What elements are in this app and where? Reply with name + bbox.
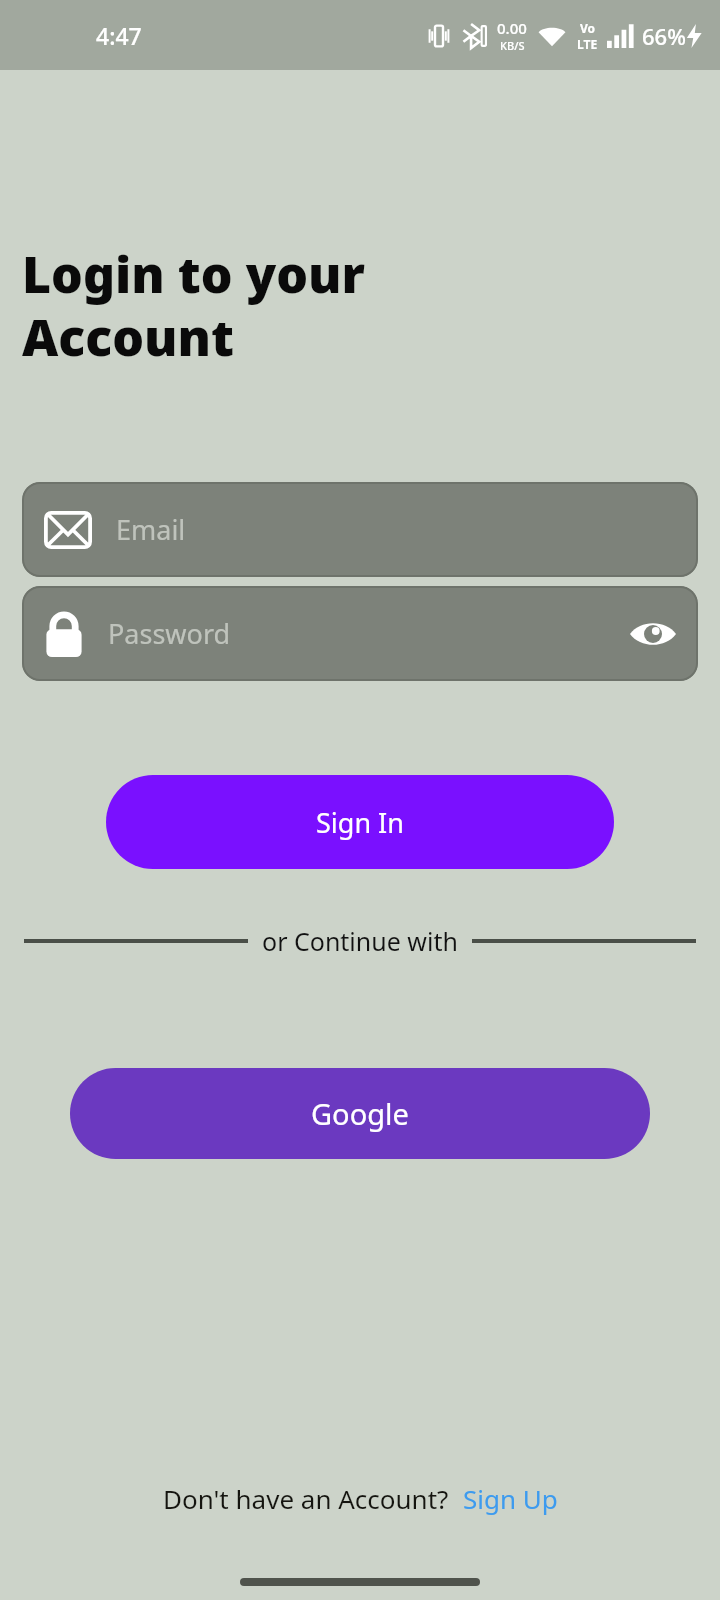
staticText: Email xyxy=(116,511,676,548)
staticText: 4:47 xyxy=(96,20,142,51)
other: Password xyxy=(44,610,84,658)
staticText: KB/S xyxy=(500,38,525,53)
staticText: Sign In xyxy=(316,804,404,841)
staticText: Google xyxy=(311,1094,409,1133)
other: Email xyxy=(44,511,92,549)
staticText: Vo xyxy=(580,20,596,36)
staticText: Don't have an Account? xyxy=(163,1481,449,1516)
staticText: LTE xyxy=(577,36,598,52)
button[interactable]: Sign In xyxy=(106,775,614,869)
staticText: Sign Up xyxy=(463,1481,558,1516)
staticText: Password xyxy=(108,615,630,652)
staticText: 0.00 xyxy=(497,18,527,38)
staticText: Login to your Account xyxy=(22,240,365,370)
staticText: 66% xyxy=(642,21,686,51)
staticText: or Continue with xyxy=(262,924,458,958)
button[interactable]: Sign Up xyxy=(463,1481,558,1516)
button[interactable]: Email xyxy=(22,482,698,577)
button[interactable]: Show password xyxy=(630,619,676,649)
button[interactable]: Google xyxy=(70,1068,650,1159)
button[interactable]: Password xyxy=(22,586,698,681)
